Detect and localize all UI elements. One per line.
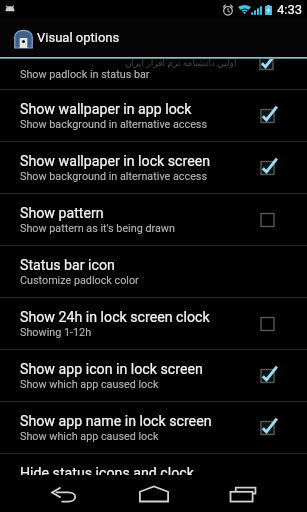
button[interactable]: Visual options <box>0 18 307 57</box>
button[interactable]: Show wallpaper in lock screen <box>0 142 307 193</box>
button[interactable]: Show wallpaper in app lock <box>0 90 307 141</box>
staticText: اولین دانشنامه نرم افزار ایران <box>125 56 237 68</box>
staticText: Visual options <box>37 30 120 45</box>
staticText: SOFTGOZAR.COM <box>0 34 198 60</box>
staticText: Full screen while locked <box>20 482 134 495</box>
button[interactable]: Show app icon in lock screen <box>0 350 307 401</box>
staticText: Showing 1-12h <box>20 326 92 339</box>
button[interactable]: Show padlock in status bar <box>0 59 307 89</box>
button[interactable]: Show app name in lock screen <box>0 402 307 453</box>
staticText: Show padlock in status bar <box>20 68 150 81</box>
button[interactable]: Hide status icons and clock <box>0 454 307 505</box>
staticText: Show which app caused lock <box>20 430 159 443</box>
staticText: 4:33 <box>277 2 303 17</box>
staticText: Show pattern as it's being drawn <box>20 222 175 235</box>
button[interactable]: Show pattern <box>0 194 307 245</box>
staticText: Show app icon in lock screen <box>20 361 203 378</box>
staticText: Show pattern <box>20 205 104 222</box>
staticText: Show background in alternative access <box>20 118 207 131</box>
staticText: Status bar icon <box>20 257 115 274</box>
staticText: Show wallpaper in app lock <box>20 101 192 118</box>
button[interactable]: Status bar icon <box>0 246 307 297</box>
button[interactable]: Home <box>131 477 176 511</box>
staticText: Show background in alternative access <box>20 170 207 183</box>
staticText: Show which app caused lock <box>20 378 159 391</box>
button[interactable]: Back <box>42 477 86 511</box>
button[interactable]: Recent apps <box>221 477 265 511</box>
staticText: Hide status icons and clock <box>20 465 194 482</box>
staticText: Show app name in lock screen <box>20 413 212 430</box>
button[interactable]: Show 24h in lock screen clock <box>0 298 307 349</box>
staticText: Customize padlock color <box>20 274 139 287</box>
staticText: Show 24h in lock screen clock <box>20 309 210 326</box>
staticText: Show wallpaper in lock screen <box>20 153 211 170</box>
